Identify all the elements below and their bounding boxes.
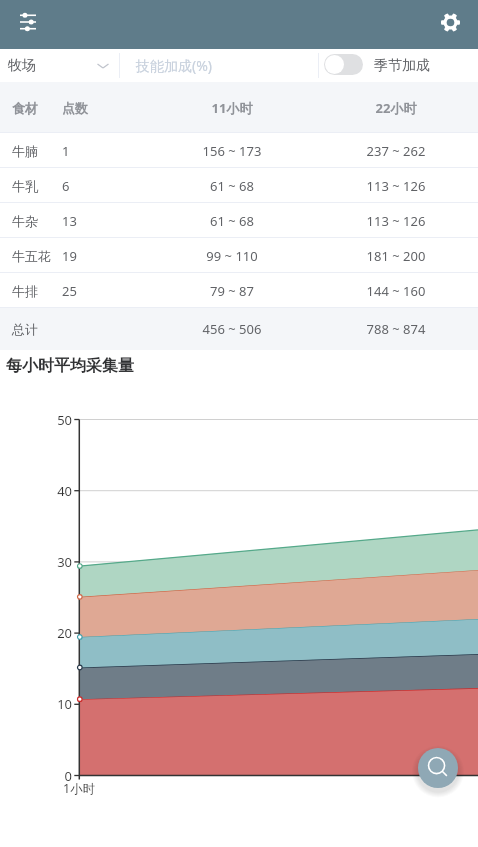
staticText: 19 bbox=[62, 247, 77, 265]
staticText: 牛五花 bbox=[12, 248, 51, 264]
staticText: 156 ~ 173 bbox=[172, 142, 292, 160]
button[interactable]: 食材 bbox=[0, 82, 478, 133]
staticText: 50 bbox=[47, 411, 72, 429]
staticText: 牛排 bbox=[12, 283, 38, 299]
button[interactable]: 牛腩 bbox=[0, 133, 478, 168]
staticText: 61 ~ 68 bbox=[172, 177, 292, 195]
staticText: 1 bbox=[62, 142, 70, 160]
staticText: 456 ~ 506 bbox=[172, 320, 292, 338]
staticText: 0 bbox=[47, 767, 72, 785]
button[interactable]: 季节加成 bbox=[319, 49, 478, 82]
button[interactable]: Search bbox=[418, 748, 458, 788]
staticText: 点数 bbox=[62, 100, 88, 116]
staticText: 79 ~ 87 bbox=[172, 282, 292, 300]
staticText: 11小时 bbox=[172, 99, 292, 117]
button[interactable]: 牛五花 bbox=[0, 238, 478, 273]
staticText: 30 bbox=[47, 553, 72, 571]
button[interactable]: 牛乳 bbox=[0, 168, 478, 203]
staticText: 22小时 bbox=[336, 99, 456, 117]
button[interactable]: 牛排 bbox=[0, 273, 478, 308]
button[interactable]: 总计 bbox=[0, 308, 478, 350]
staticText: 40 bbox=[47, 482, 72, 500]
staticText: 牛腩 bbox=[12, 143, 38, 159]
button[interactable]: Settings bbox=[434, 6, 466, 38]
staticText: 99 ~ 110 bbox=[172, 247, 292, 265]
button[interactable]: 牧场 bbox=[0, 49, 119, 82]
staticText: 6 bbox=[62, 177, 70, 195]
staticText: 10 bbox=[47, 695, 72, 713]
staticText: 1小时 bbox=[63, 780, 96, 797]
staticText: 牛乳 bbox=[12, 178, 38, 194]
staticText: 181 ~ 200 bbox=[336, 247, 456, 265]
staticText: 总计 bbox=[12, 321, 38, 337]
staticText: 25 bbox=[62, 282, 77, 300]
staticText: 技能加成(%) bbox=[136, 56, 213, 75]
staticText: 61 ~ 68 bbox=[172, 212, 292, 230]
button[interactable]: 技能加成(%) bbox=[120, 49, 318, 82]
staticText: 788 ~ 874 bbox=[336, 320, 456, 338]
staticText: 113 ~ 126 bbox=[336, 177, 456, 195]
staticText: 113 ~ 126 bbox=[336, 212, 456, 230]
staticText: 季节加成 bbox=[374, 57, 430, 75]
staticText: 20 bbox=[47, 624, 72, 642]
button[interactable]: Filters bbox=[12, 6, 44, 38]
button[interactable]: 牛杂 bbox=[0, 203, 478, 238]
staticText: 237 ~ 262 bbox=[336, 142, 456, 160]
staticText: 牧场 bbox=[8, 57, 36, 75]
staticText: 牛杂 bbox=[12, 213, 38, 229]
staticText: 食材 bbox=[12, 100, 38, 116]
staticText: 13 bbox=[62, 212, 77, 230]
staticText: 每小时平均采集量 bbox=[6, 356, 134, 376]
staticText: 144 ~ 160 bbox=[336, 282, 456, 300]
